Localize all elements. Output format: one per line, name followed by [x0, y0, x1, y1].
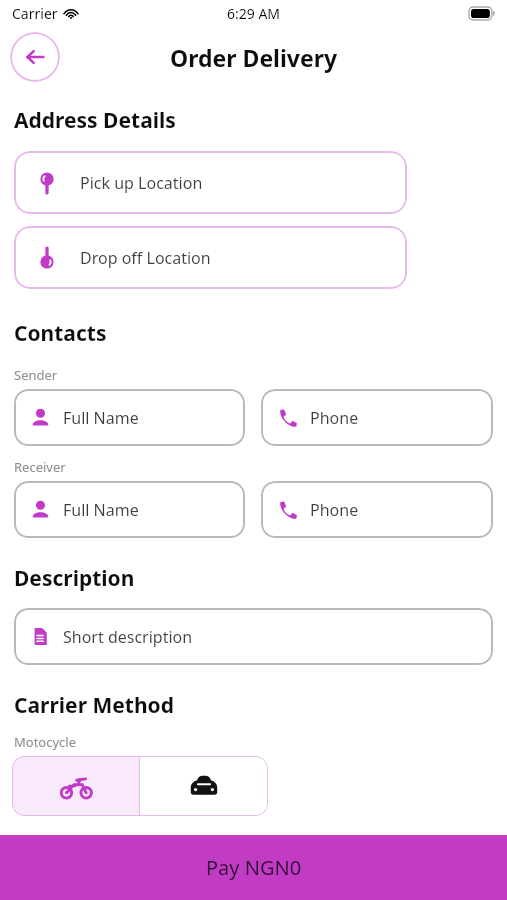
button[interactable]: Full Name [14, 481, 245, 538]
staticText: Motocycle [14, 733, 77, 751]
staticText: Order Delivery [170, 42, 338, 73]
button[interactable]: Pick up Location [14, 151, 407, 214]
button[interactable]: Back [10, 32, 60, 82]
staticText: Phone [310, 407, 359, 429]
staticText: 6:29 AM [227, 4, 281, 23]
button[interactable]: Short description [14, 608, 493, 665]
button[interactable]: Pay NGN0 [0, 835, 507, 900]
staticText: Description [14, 564, 135, 593]
staticText: Drop off Location [80, 247, 211, 269]
staticText: Full Name [63, 499, 139, 521]
button[interactable]: Full Name [14, 389, 245, 446]
button[interactable]: Car [140, 756, 268, 816]
staticText: Address Details [14, 106, 176, 135]
staticText: Short description [63, 626, 193, 648]
button[interactable]: Motorcycle [12, 756, 139, 816]
staticText: Contacts [14, 319, 107, 348]
button[interactable]: Phone [261, 389, 493, 446]
staticText: Sender [14, 366, 58, 384]
staticText: Carrier Method [14, 691, 174, 720]
staticText: Pay NGN0 [206, 854, 302, 881]
staticText: Full Name [63, 407, 139, 429]
staticText: Phone [310, 499, 359, 521]
button[interactable]: Drop off Location [14, 226, 407, 289]
staticText: Carrier [12, 4, 58, 23]
staticText: Receiver [14, 458, 66, 476]
staticText: Pick up Location [80, 172, 203, 194]
button[interactable]: Phone [261, 481, 493, 538]
